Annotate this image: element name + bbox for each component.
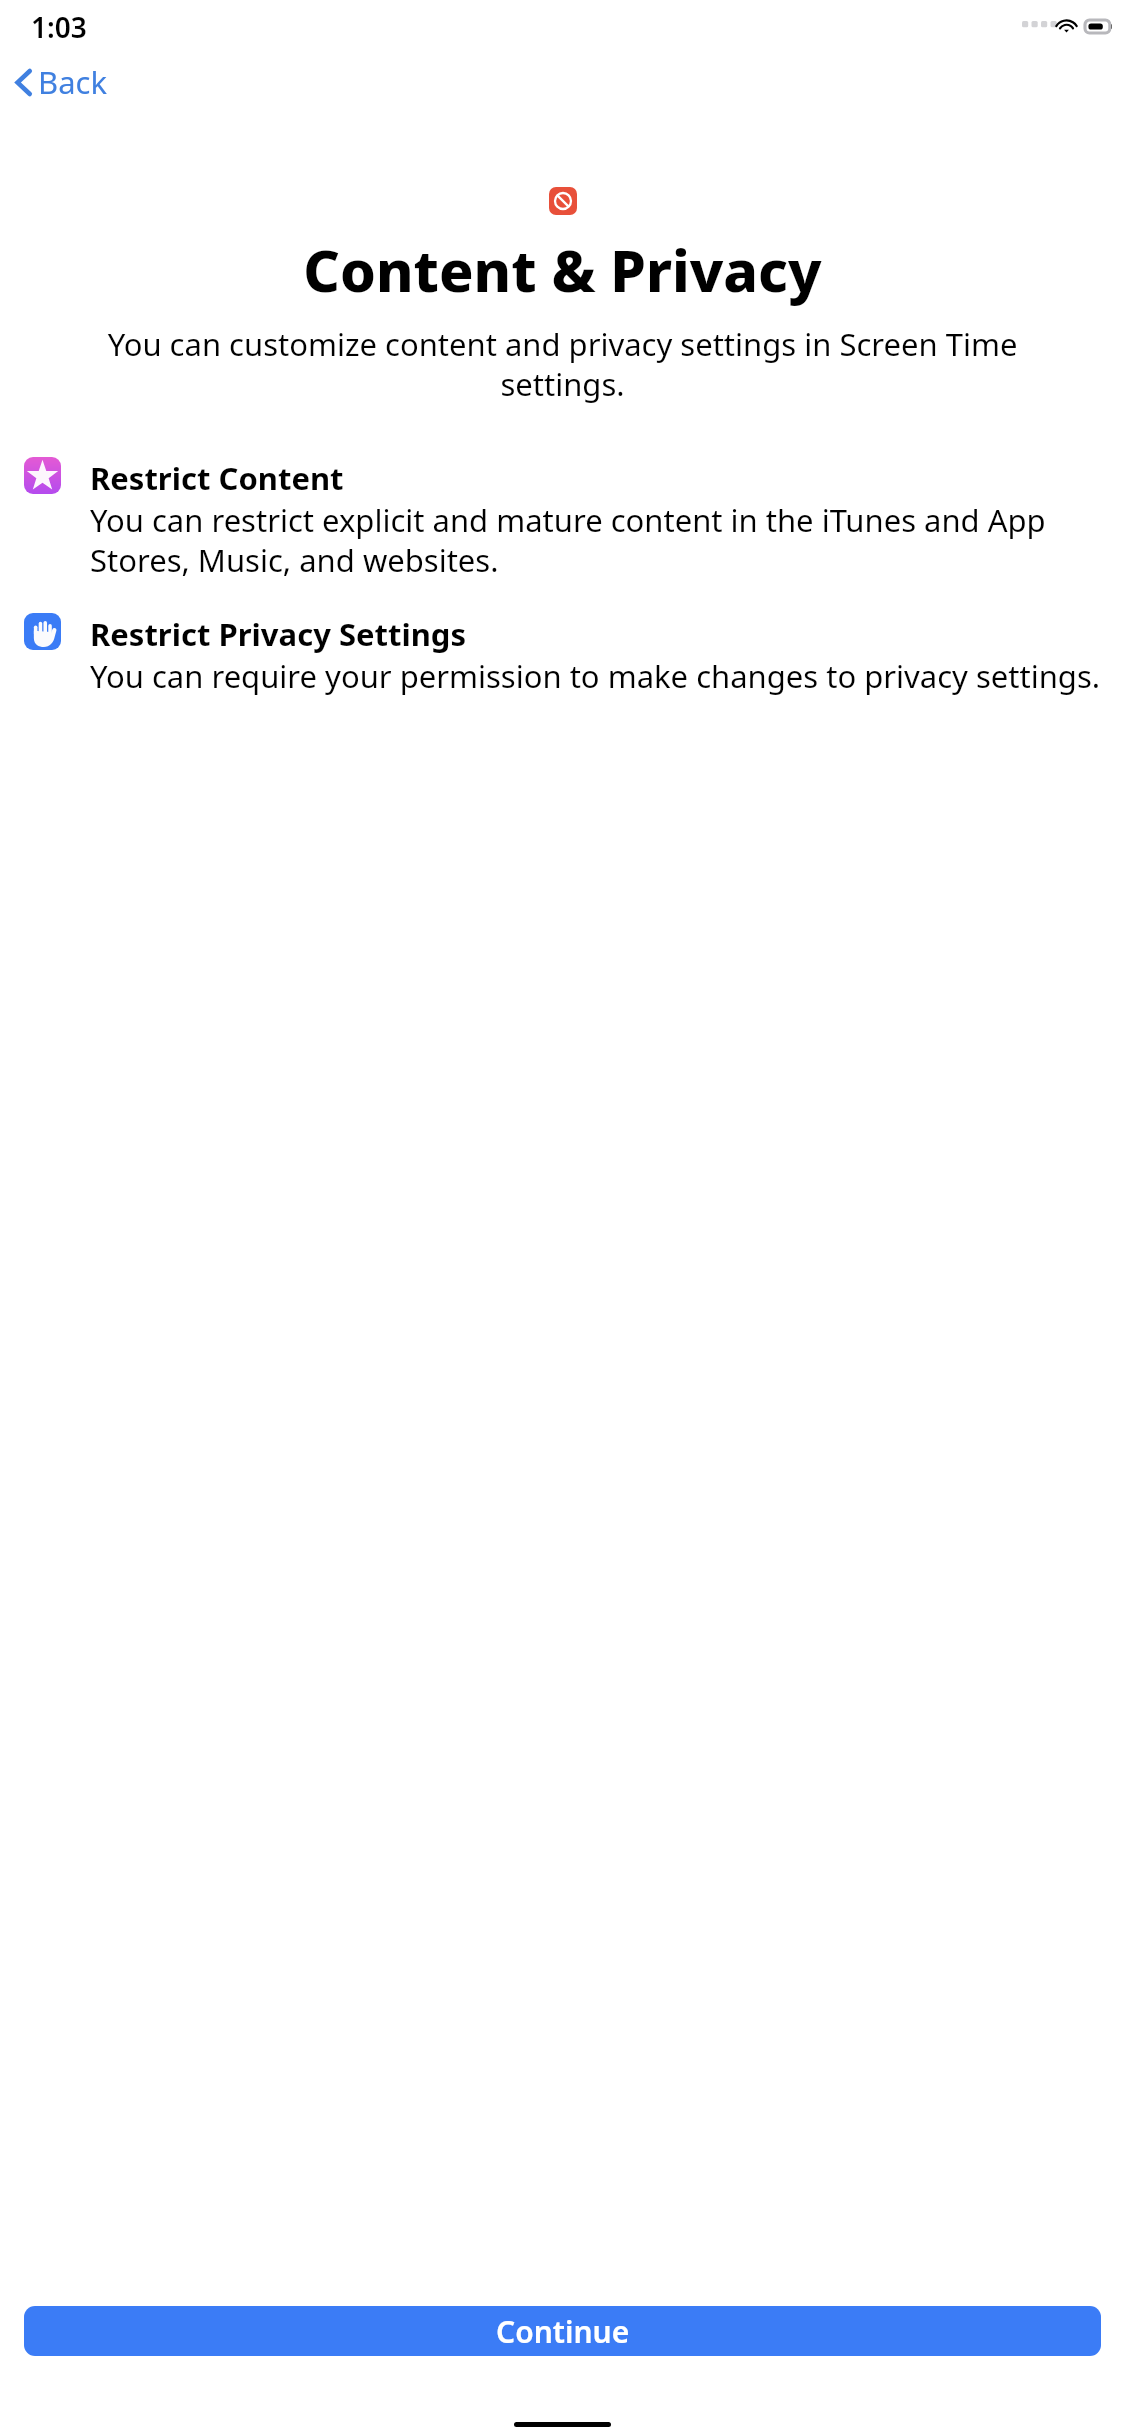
staticText: 1:03 [31, 8, 87, 46]
staticText: You can restrict explicit and mature con… [90, 499, 1111, 581]
button[interactable]: Back [8, 57, 121, 107]
button[interactable]: Continue [24, 2306, 1101, 2356]
staticText: Content & Privacy [20, 231, 1105, 309]
staticText: Restrict Content [90, 457, 344, 499]
staticText: Continue [496, 2311, 630, 2352]
staticText: Back [38, 61, 107, 103]
staticText: You can customize content and privacy se… [66, 323, 1059, 405]
staticText: Restrict Privacy Settings [90, 613, 466, 655]
staticText: You can require your permission to make … [90, 655, 1101, 697]
